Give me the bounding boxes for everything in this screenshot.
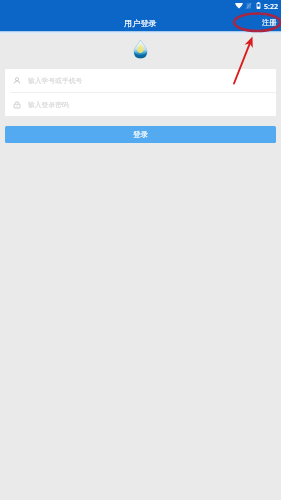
staticText: 登录 <box>133 130 149 140</box>
button[interactable]: Register <box>256 17 281 28</box>
staticText: 用户登录 <box>124 18 157 28</box>
button[interactable]: 登录 <box>5 126 276 143</box>
staticText: 输入登录密码 <box>28 100 69 109</box>
staticText: 输入学号或手机号 <box>28 76 83 85</box>
button[interactable]: 输入登录密码 <box>5 93 276 116</box>
button[interactable]: 输入学号或手机号 <box>5 69 276 92</box>
staticText: 5:22 <box>264 2 278 12</box>
staticText: 注册 <box>262 18 277 27</box>
